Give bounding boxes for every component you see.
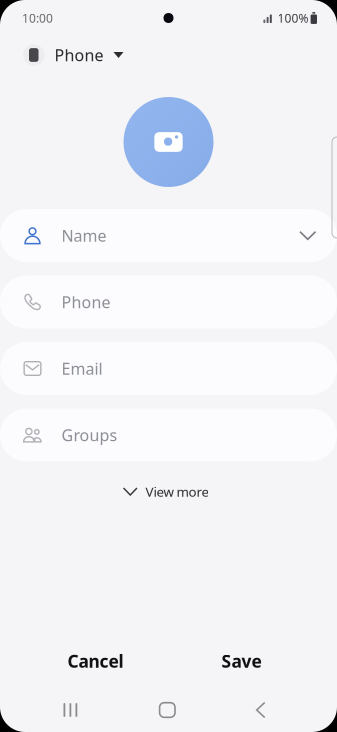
button[interactable]: Name [0,209,337,262]
staticText: Cancel [67,649,123,672]
staticText: Groups [61,424,117,446]
button[interactable]: Save [193,641,289,681]
staticText: Name [61,225,106,246]
staticText: 10:00 [22,10,53,26]
staticText: Email [61,358,102,379]
button[interactable]: Home [141,691,194,729]
button[interactable]: Back [194,691,328,729]
button[interactable]: Cancel [47,641,143,681]
staticText: Phone [54,44,103,66]
staticText: 100% [278,10,309,26]
staticText: View more [145,483,209,500]
button[interactable]: Groups [0,408,337,461]
button[interactable]: Phone [0,275,337,328]
button[interactable]: View more [125,476,211,506]
staticText: Phone [61,291,110,313]
staticText: Save [221,649,261,672]
button[interactable]: Recents [0,691,141,729]
button[interactable]: Email [0,342,337,395]
